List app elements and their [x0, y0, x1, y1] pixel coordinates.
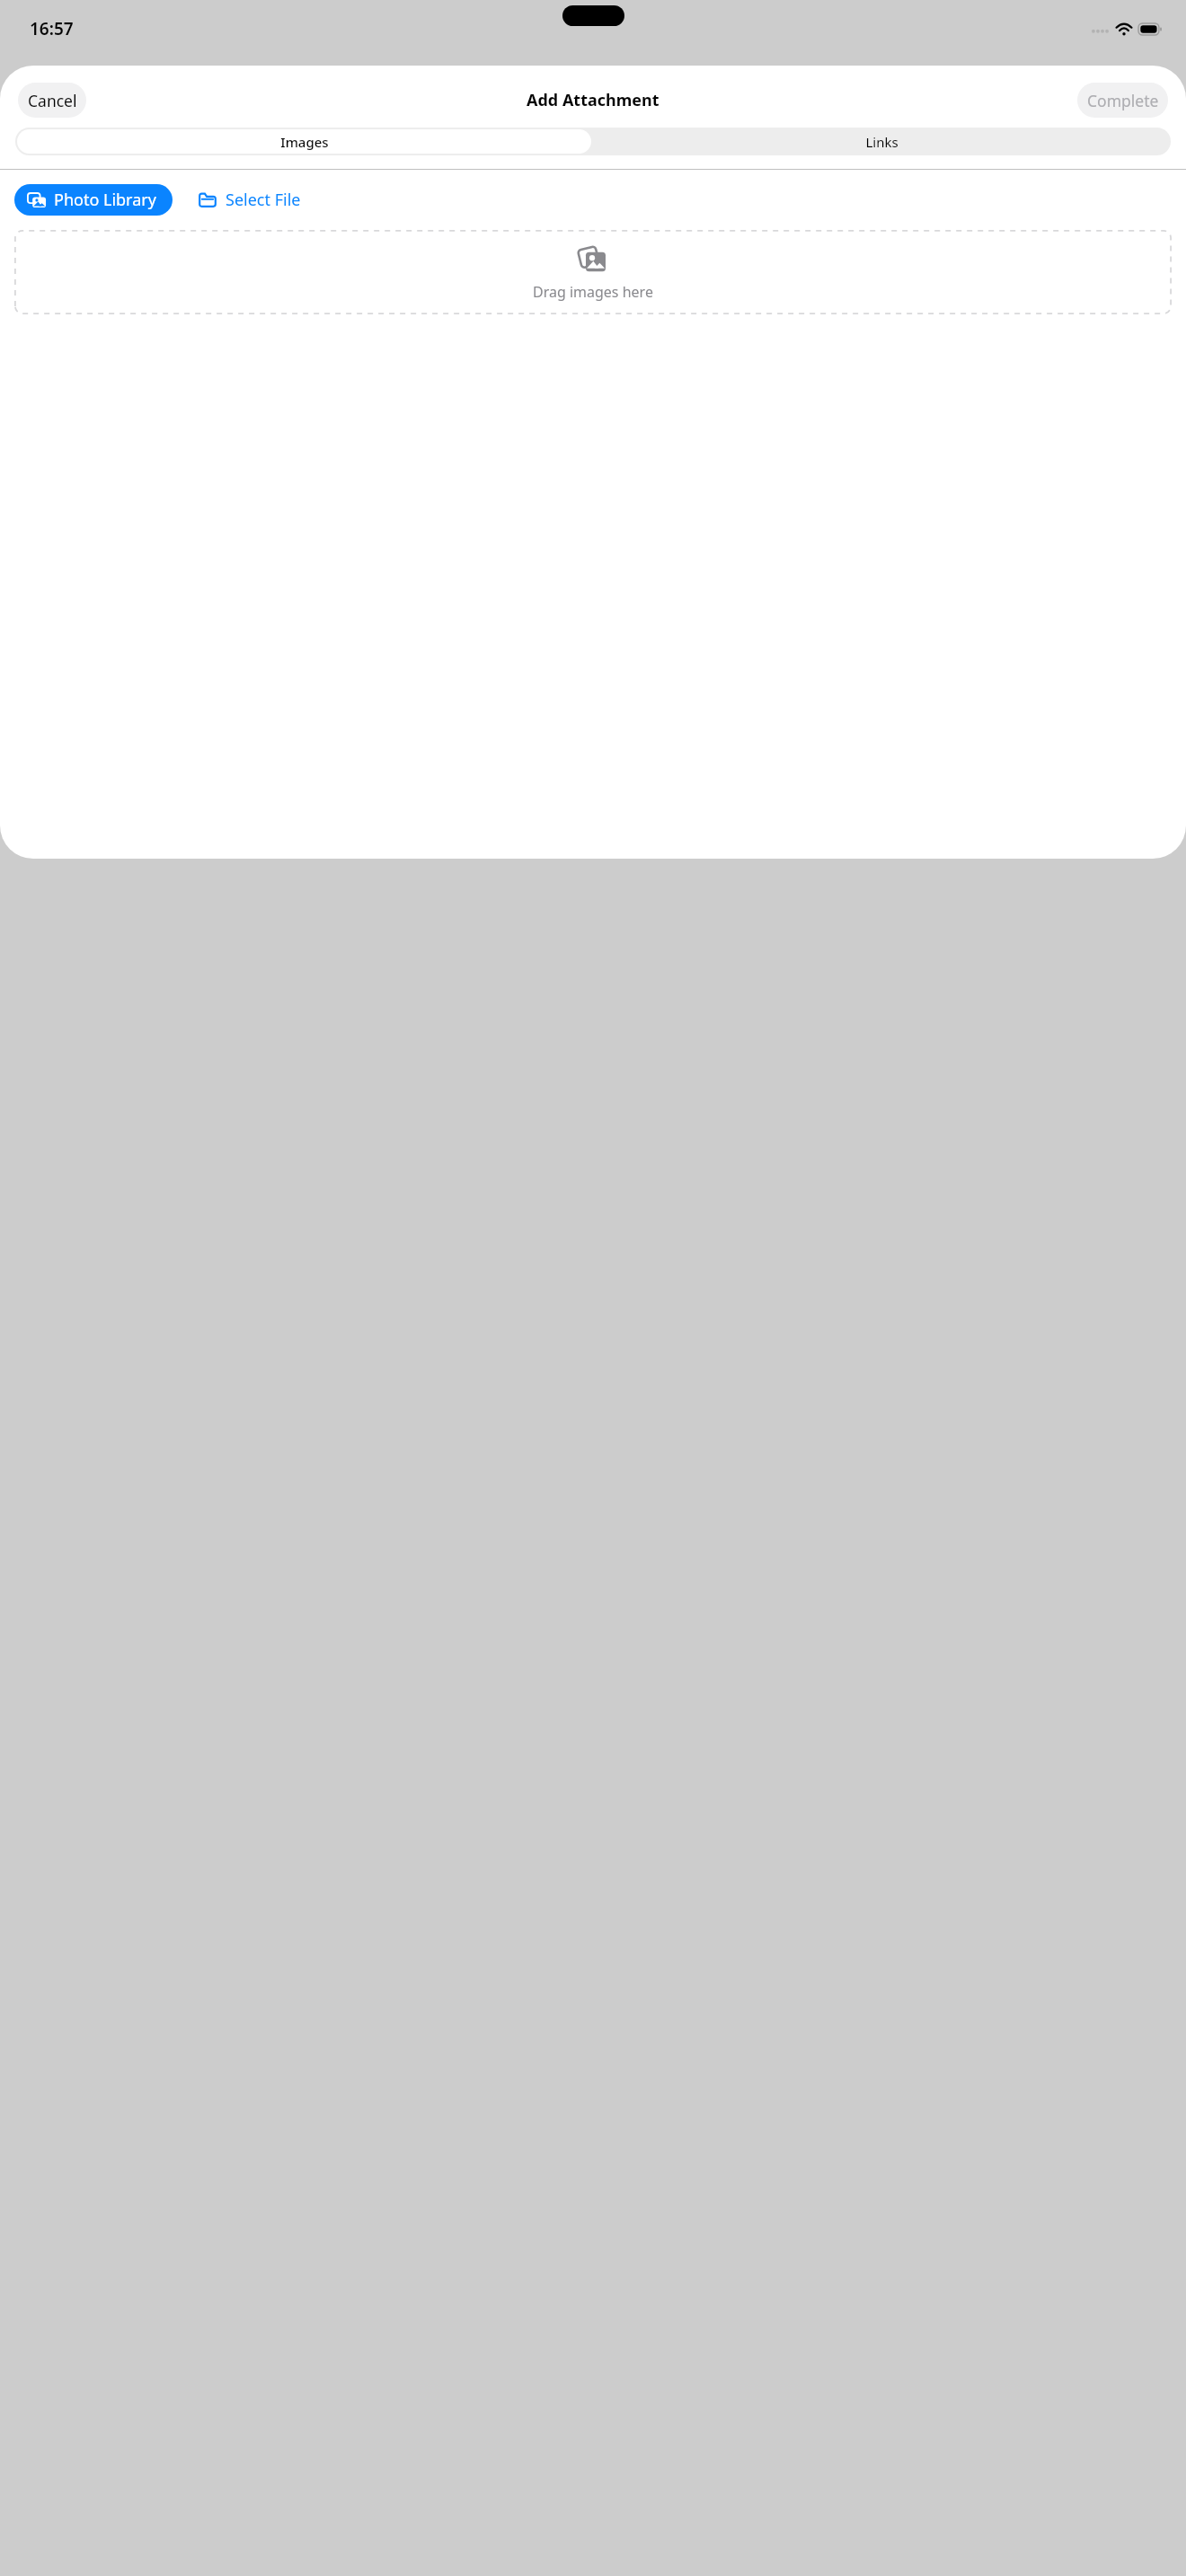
- button[interactable]: Links: [593, 128, 1171, 155]
- staticText: Photo Library: [54, 189, 156, 211]
- button[interactable]: Complete: [1077, 83, 1168, 118]
- staticText: Select File: [226, 189, 301, 211]
- button[interactable]: Photo Library: [14, 184, 173, 216]
- staticText: Complete: [1087, 90, 1159, 111]
- button[interactable]: Images: [17, 129, 591, 154]
- staticText: Links: [865, 133, 898, 151]
- button[interactable]: Cancel: [18, 83, 86, 118]
- button[interactable]: Drag images here: [14, 230, 1172, 314]
- staticText: Cancel: [28, 90, 77, 111]
- button[interactable]: Select File: [196, 184, 303, 216]
- staticText: Drag images here: [533, 282, 653, 302]
- staticText: Add Attachment: [527, 89, 659, 111]
- staticText: Images: [280, 133, 329, 151]
- staticText: 16:57: [30, 17, 74, 40]
